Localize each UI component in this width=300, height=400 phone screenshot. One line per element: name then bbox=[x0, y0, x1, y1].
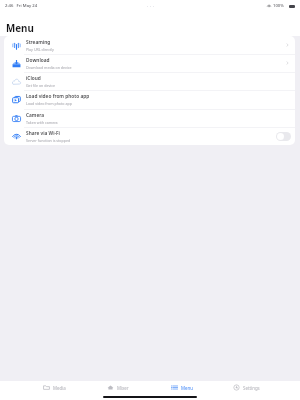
staticText: Settings bbox=[243, 385, 260, 391]
staticText: Menu bbox=[6, 22, 34, 35]
button[interactable]: Toggle Wi-Fi sharing bbox=[276, 132, 291, 141]
staticText: Taken with camera bbox=[26, 120, 58, 125]
staticText: Streaming bbox=[26, 39, 51, 46]
staticText: 100% bbox=[273, 3, 284, 9]
staticText: Play URL directly bbox=[26, 47, 54, 52]
staticText: Get file on device bbox=[26, 83, 55, 88]
staticText: Server function is stopped bbox=[26, 138, 71, 143]
staticText: Load video from photo app bbox=[26, 93, 90, 100]
staticText: Menu bbox=[181, 385, 193, 391]
staticText: Load video from photo app bbox=[26, 101, 72, 106]
staticText: Download media on device bbox=[26, 65, 72, 70]
staticText: Share via Wi-Fi bbox=[26, 130, 60, 137]
button[interactable]: Settings bbox=[214, 381, 278, 394]
staticText: Download bbox=[26, 57, 50, 64]
button[interactable]: Camera bbox=[4, 109, 295, 127]
staticText: Camera bbox=[26, 112, 45, 119]
staticText: iCloud bbox=[26, 75, 41, 82]
button[interactable]: Menu bbox=[150, 381, 214, 394]
staticText: 2:46 Fri May 24 bbox=[5, 3, 38, 9]
button[interactable]: Download bbox=[4, 54, 295, 72]
staticText: Media bbox=[53, 385, 66, 391]
staticText: Mixer bbox=[117, 385, 129, 391]
button[interactable]: iCloud bbox=[4, 72, 295, 90]
button[interactable]: Share via Wi-Fi bbox=[4, 127, 295, 145]
button[interactable]: Media bbox=[22, 381, 86, 394]
button[interactable]: Mixer bbox=[86, 381, 150, 394]
button[interactable]: Streaming bbox=[4, 36, 295, 54]
button[interactable]: Load video from photo app bbox=[4, 90, 295, 108]
